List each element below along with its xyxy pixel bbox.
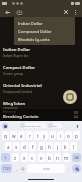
staticText: k (64, 144, 67, 150)
staticText: 30000000 (3, 107, 18, 109)
button[interactable]: f (29, 142, 36, 151)
staticText: Rhodials Ig-units (18, 37, 50, 42)
staticText: Mentions (3, 110, 17, 114)
staticText: Breaking Curtain (3, 114, 39, 120)
button[interactable]: k (62, 142, 69, 151)
staticText: r (29, 133, 31, 139)
button[interactable]: Space (27, 164, 65, 173)
button[interactable]: g (38, 142, 45, 151)
staticText: h (48, 144, 51, 150)
button[interactable]: z (12, 153, 19, 162)
staticText: Oriental Industrial (3, 83, 42, 89)
button[interactable]: u (49, 131, 56, 140)
staticText: a (7, 144, 10, 150)
button[interactable]: Back (3, 8, 11, 16)
button[interactable]: b (46, 153, 53, 162)
staticText: f (32, 144, 34, 150)
staticText: WingToken (3, 101, 26, 106)
button[interactable]: s (13, 142, 20, 151)
button[interactable]: . (66, 164, 71, 173)
staticText: translate now... (25, 124, 43, 127)
staticText: n (56, 155, 59, 161)
button[interactable]: ☺ (20, 164, 26, 173)
staticText: Compound Dollar (18, 29, 52, 34)
button[interactable]: y (41, 131, 48, 140)
staticText: q (4, 133, 7, 139)
staticText: o (67, 133, 70, 139)
staticText: , (16, 166, 17, 171)
staticText: s (15, 144, 18, 150)
button[interactable]: Camera (15, 8, 23, 16)
button[interactable]: Add (63, 90, 77, 104)
staticText: y (43, 133, 46, 139)
button[interactable]: m (63, 153, 70, 162)
button[interactable]: Voice input (74, 123, 80, 129)
button[interactable]: d (21, 142, 28, 151)
button[interactable]: w (10, 131, 17, 140)
button[interactable]: Oriental Industrial (3, 81, 82, 99)
staticText: x (23, 155, 26, 161)
button[interactable]: More options (71, 8, 79, 16)
button[interactable]: e (18, 131, 25, 140)
button[interactable]: ?123 (1, 164, 12, 173)
button[interactable]: tab (48, 123, 62, 128)
staticText: SEE ALL (74, 111, 79, 119)
staticText: l (73, 144, 75, 150)
staticText: p (75, 133, 78, 139)
button[interactable]: h (46, 142, 53, 151)
button[interactable]: x (21, 153, 28, 162)
staticText: tab (53, 124, 57, 127)
staticText: t (37, 133, 39, 139)
button[interactable]: ⌫ (72, 153, 81, 162)
button[interactable]: , (13, 164, 19, 173)
staticText: b (48, 155, 51, 161)
staticText: ⌫ (74, 156, 79, 160)
staticText: ☺ (21, 167, 25, 171)
staticText: i (60, 133, 62, 139)
staticText: c (31, 155, 34, 161)
staticText: j (57, 144, 59, 150)
button[interactable]: l (70, 142, 77, 151)
staticText: g (40, 144, 43, 150)
button[interactable]: n (54, 153, 61, 162)
staticText: Indian Dollar (3, 47, 31, 53)
button[interactable]: WingToken (3, 101, 82, 109)
button[interactable]: Compound Dollar (18, 27, 75, 35)
button[interactable]: Assistant (2, 123, 8, 129)
staticText: e (20, 133, 23, 139)
button[interactable]: Compact Dollar (3, 63, 82, 81)
staticText: ⇧ (4, 156, 7, 160)
button[interactable]: v (38, 153, 45, 162)
button[interactable]: c (29, 153, 36, 162)
button[interactable]: q (2, 131, 9, 140)
button[interactable]: Close (62, 8, 70, 16)
button[interactable]: Mentions (0, 109, 82, 121)
button[interactable]: p (73, 131, 80, 140)
staticText: Indian Rupee Inc (3, 54, 29, 58)
staticText: Indian Dollar (18, 21, 43, 26)
staticText: u (51, 133, 54, 139)
button[interactable]: t (34, 131, 41, 140)
button[interactable]: translate now... (20, 123, 46, 128)
button[interactable]: Search (72, 164, 81, 173)
button[interactable]: i (57, 131, 64, 140)
staticText: v (40, 155, 43, 161)
staticText: Centre group (3, 72, 23, 76)
button[interactable]: Rhodials Ig-units (18, 35, 75, 43)
staticText: . (68, 166, 69, 171)
button[interactable]: ⇧ (1, 153, 10, 162)
staticText: Compact Dollar (3, 65, 36, 71)
button[interactable]: o (65, 131, 72, 140)
button[interactable]: a (5, 142, 12, 151)
button[interactable]: j (54, 142, 61, 151)
staticText: w (12, 133, 16, 139)
button[interactable]: Indian Dollar (3, 45, 82, 63)
staticText: Compound Limited (3, 90, 32, 94)
button[interactable]: r (26, 131, 33, 140)
staticText: m (64, 155, 69, 161)
button[interactable]: Indian Dollar (18, 19, 75, 27)
staticText: ?123 (3, 166, 11, 171)
staticText: z (14, 155, 17, 161)
staticText: d (23, 144, 26, 150)
